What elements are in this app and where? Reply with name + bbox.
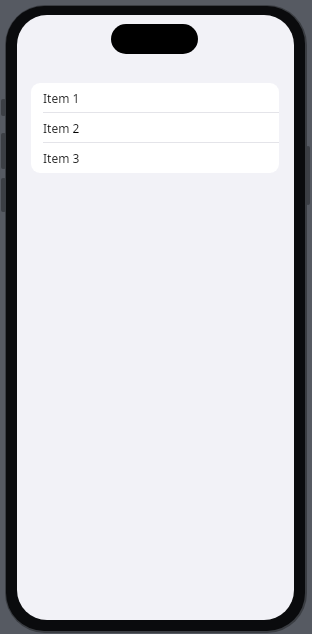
staticText: Item 3	[43, 150, 80, 166]
button[interactable]: Item 2	[31, 113, 279, 143]
staticText: Item 2	[43, 120, 80, 136]
button[interactable]: Item 3	[31, 143, 279, 173]
button[interactable]: Item 1	[31, 83, 279, 113]
staticText: Item 1	[43, 90, 80, 106]
